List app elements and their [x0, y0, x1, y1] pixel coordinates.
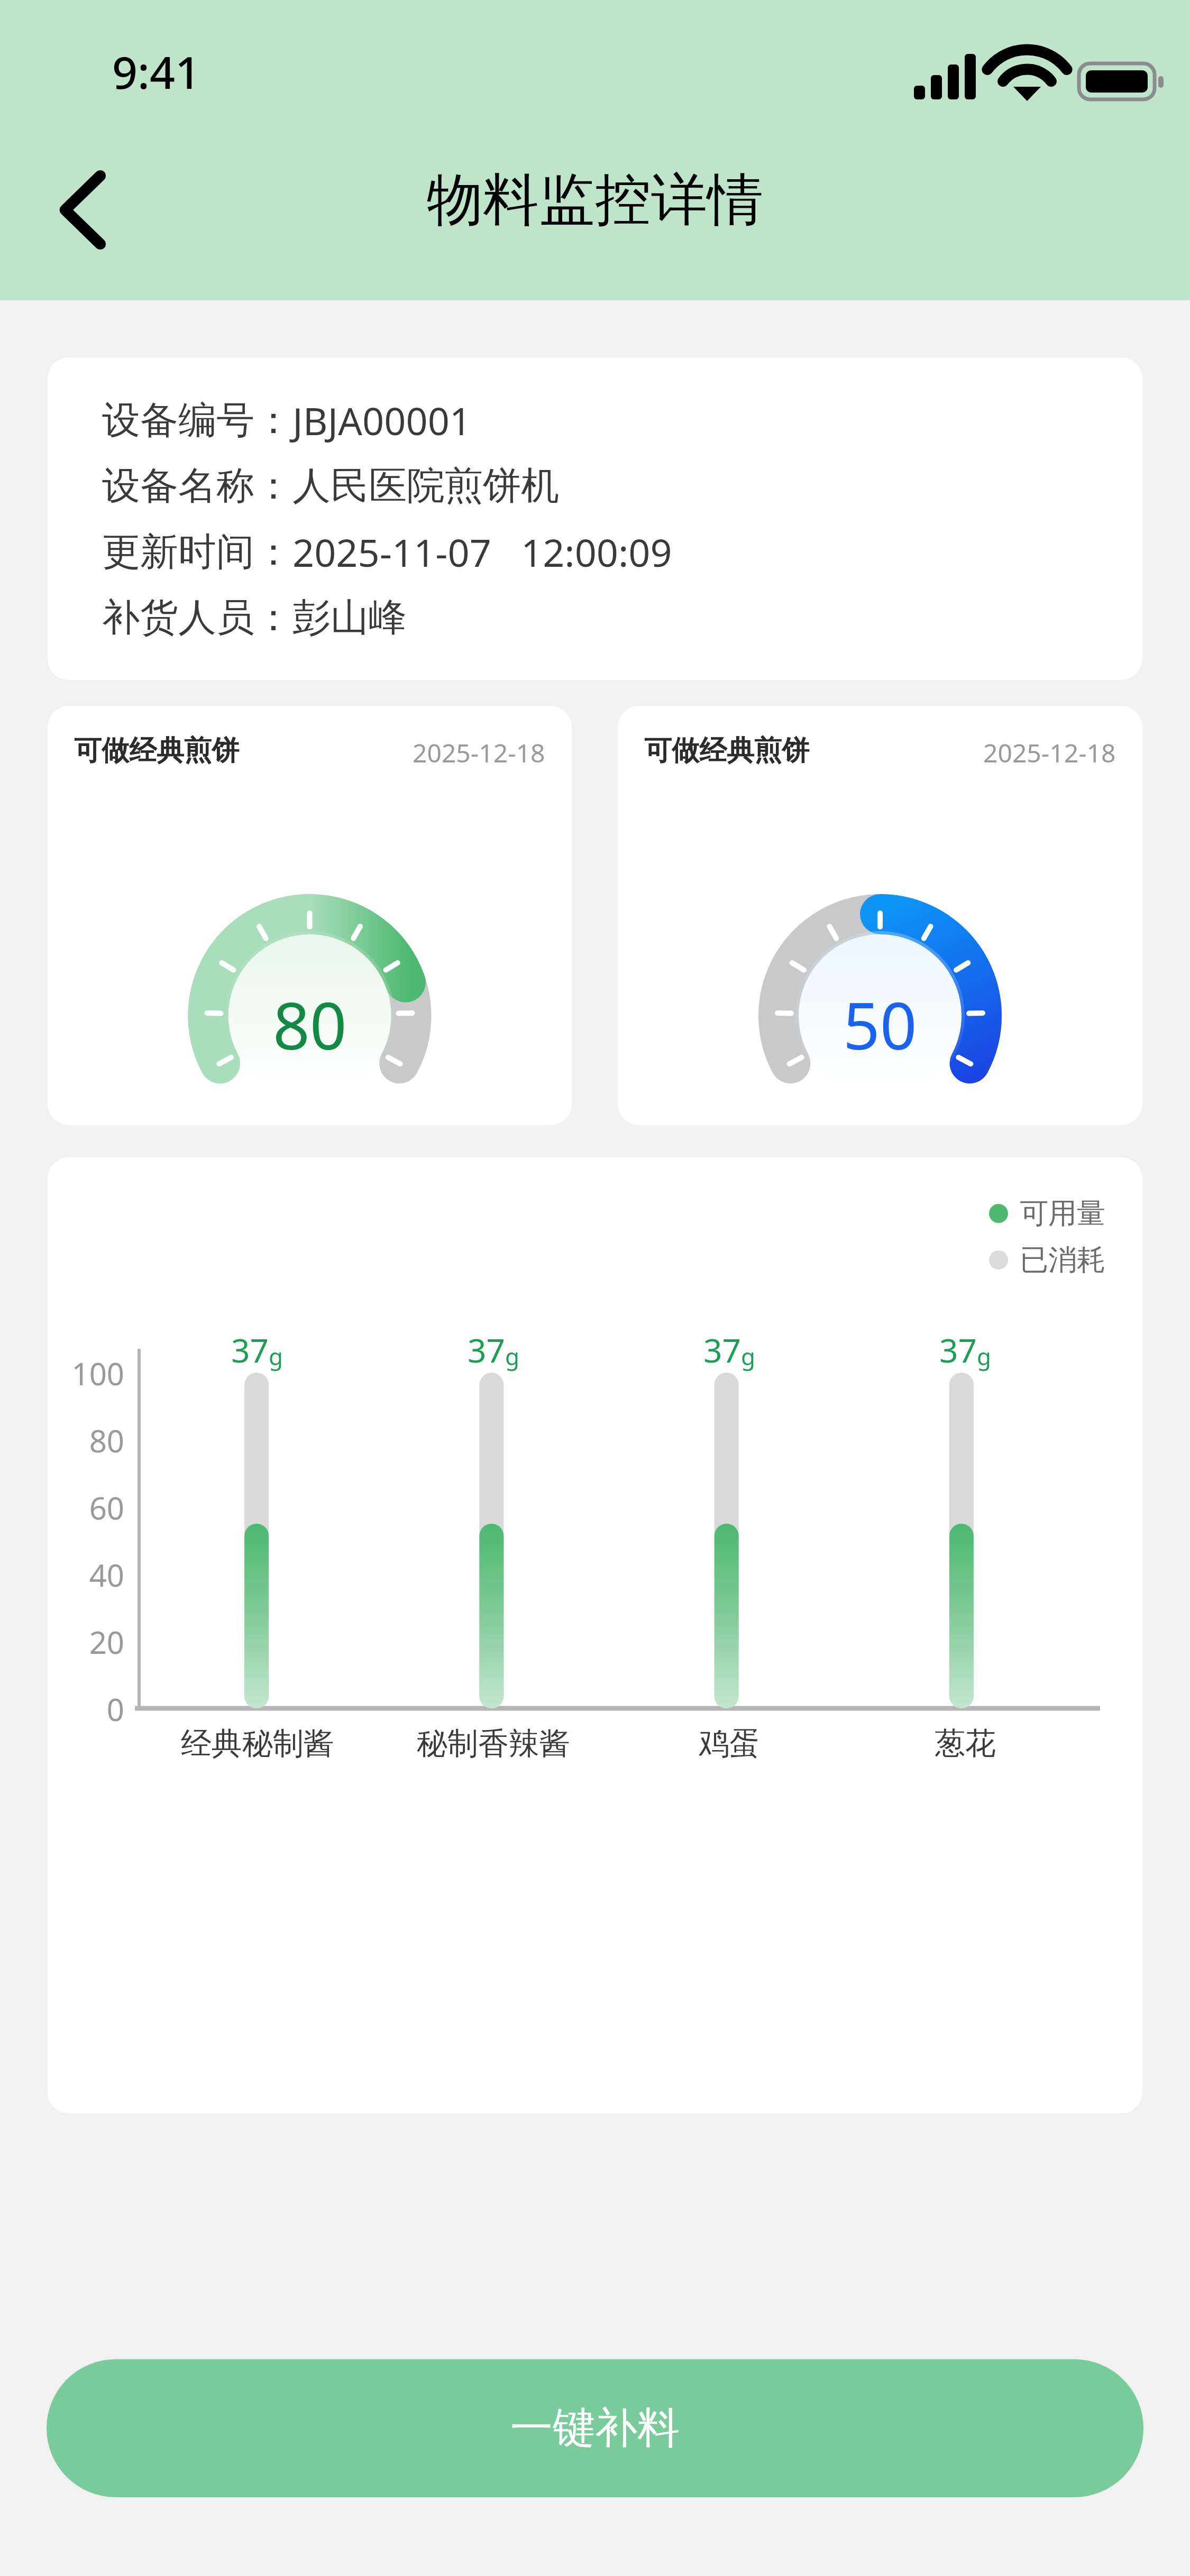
staticText: 80: [273, 981, 347, 1069]
staticText: 经典秘制酱: [181, 1724, 334, 1763]
staticText: 彭山峰: [292, 594, 407, 642]
staticText: 可做经典煎饼: [74, 733, 239, 768]
staticText: 鸡蛋: [699, 1724, 760, 1763]
staticText: 20: [89, 1621, 124, 1663]
button[interactable]: 可做经典煎饼: [618, 706, 1142, 1125]
staticText: JBJA00001: [292, 394, 472, 446]
staticText: 0: [106, 1688, 124, 1730]
staticText: g: [741, 1340, 756, 1372]
staticText: 100: [71, 1353, 124, 1394]
button[interactable]: 可做经典煎饼: [48, 706, 572, 1125]
staticText: 37: [231, 1328, 269, 1372]
staticText: 已消耗: [1020, 1242, 1105, 1278]
staticText: 37: [703, 1328, 741, 1372]
staticText: g: [505, 1340, 520, 1372]
staticText: 37: [468, 1328, 505, 1372]
staticText: 葱花: [935, 1724, 996, 1763]
button[interactable]: 一键补料: [47, 2359, 1143, 2497]
staticText: 物料监控详情: [427, 165, 763, 236]
staticText: 可做经典煎饼: [644, 733, 809, 768]
button[interactable]: Back: [36, 160, 136, 260]
staticText: 秘制香辣酱: [417, 1724, 570, 1763]
staticText: 2025-12-18: [983, 735, 1116, 770]
staticText: 可用量: [1020, 1195, 1105, 1231]
staticText: 补货人员：: [102, 594, 292, 642]
staticText: 2025-11-07 12:00:09: [292, 526, 672, 578]
staticText: g: [269, 1340, 283, 1372]
staticText: 一键补料: [510, 2402, 680, 2455]
staticText: 人民医院煎饼机: [292, 462, 559, 510]
staticText: 80: [89, 1420, 124, 1461]
staticText: 40: [89, 1554, 124, 1596]
staticText: 设备编号：: [102, 397, 292, 445]
staticText: 60: [89, 1487, 124, 1529]
staticText: 2025-12-18: [413, 735, 545, 770]
staticText: 50: [843, 981, 917, 1069]
staticText: g: [977, 1340, 992, 1372]
staticText: 9:41: [112, 41, 200, 102]
staticText: 37: [939, 1328, 977, 1372]
staticText: 更新时间：: [102, 528, 292, 576]
staticText: 设备名称：: [102, 462, 292, 510]
